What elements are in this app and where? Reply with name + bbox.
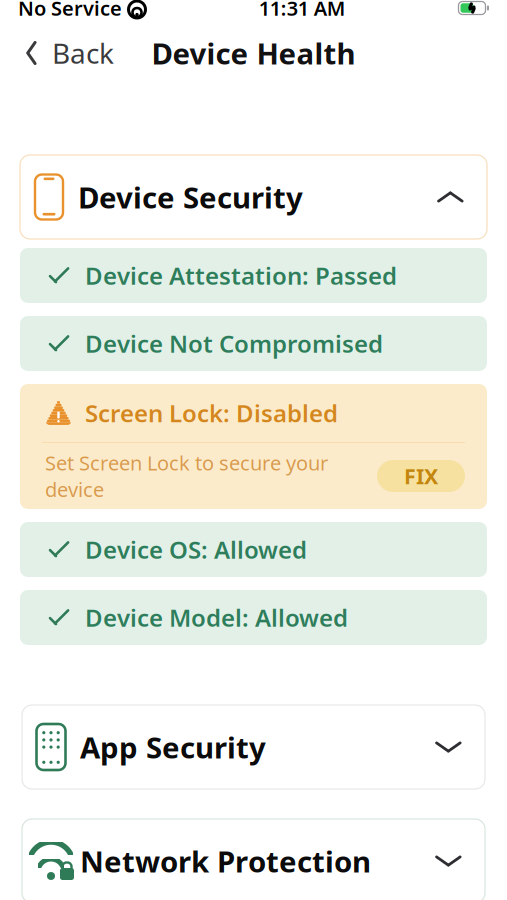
- staticText: Device Model: Allowed: [85, 602, 348, 633]
- button[interactable]: FIX: [377, 460, 465, 492]
- staticText: Screen Lock: Disabled: [85, 397, 338, 429]
- staticText: Device Attestation: Passed: [85, 260, 397, 291]
- button[interactable]: App Security: [22, 705, 485, 789]
- staticText: Device OS: Allowed: [85, 534, 307, 565]
- staticText: Back: [52, 34, 114, 72]
- staticText: 11:31 AM: [259, 0, 346, 21]
- button[interactable]: Back: [6, 26, 128, 80]
- staticText: Device Not Compromised: [85, 328, 383, 359]
- staticText: FIX: [404, 462, 438, 490]
- staticText: Network Protection: [80, 841, 371, 880]
- button[interactable]: Network Protection: [22, 819, 485, 900]
- staticText: Device Health: [151, 33, 355, 72]
- staticText: Set Screen Lock to secure your device: [45, 449, 328, 502]
- button[interactable]: Device Security: [20, 155, 487, 239]
- staticText: Device Security: [78, 177, 303, 216]
- staticText: App Security: [80, 727, 266, 766]
- staticText: No Service: [18, 0, 122, 21]
